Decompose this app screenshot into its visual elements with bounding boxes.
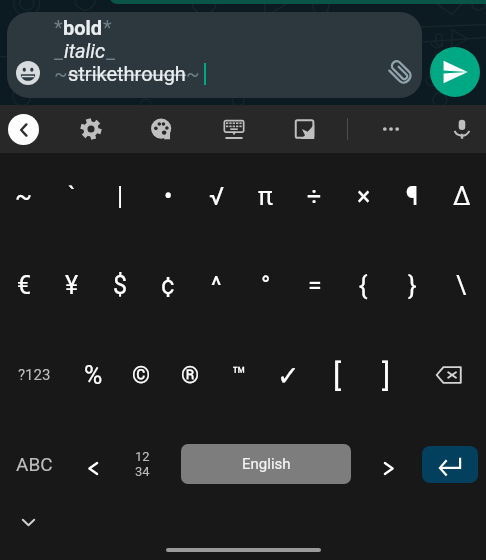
button[interactable]: Hide keyboard (16, 510, 40, 534)
button[interactable]: [ (313, 330, 362, 420)
button[interactable]: } (388, 240, 437, 330)
button[interactable]: \ (437, 240, 486, 330)
staticText: ] (382, 357, 391, 393)
staticText: ™ (232, 362, 247, 389)
staticText: ® (181, 362, 200, 389)
button[interactable]: English (181, 444, 351, 484)
staticText: } (408, 271, 417, 300)
button[interactable]: ~ (0, 153, 48, 240)
staticText: \ (456, 271, 467, 300)
button[interactable]: ` (48, 153, 96, 240)
button[interactable]: = (290, 240, 339, 330)
button[interactable]: √ (192, 153, 241, 240)
button[interactable]: ¶ (388, 153, 437, 240)
staticText: € (17, 271, 32, 300)
button[interactable]: Settings (72, 110, 110, 148)
staticText: = (308, 271, 322, 300)
staticText: × (357, 182, 371, 211)
staticText: © (132, 362, 151, 389)
button[interactable]: Theme (143, 110, 181, 148)
button[interactable]: * (7, 12, 422, 98)
staticText: $ (113, 271, 128, 300)
staticText: _ (106, 39, 116, 62)
staticText: 34 (135, 464, 150, 479)
staticText: ?123 (18, 366, 51, 384)
button[interactable]: × (339, 153, 388, 240)
button[interactable]: 12 (118, 420, 167, 508)
button[interactable]: ✓ (264, 330, 313, 420)
button[interactable]: Enter (422, 446, 478, 483)
button[interactable]: ABC (0, 420, 69, 508)
staticText: ✓ (277, 360, 300, 391)
button[interactable]: ° (241, 240, 290, 330)
button[interactable]: Emoji (10, 55, 46, 91)
staticText: * (54, 16, 63, 39)
staticText: ¢ (161, 271, 175, 300)
staticText: ° (261, 271, 271, 300)
staticText: 12 (135, 449, 150, 464)
staticText: ` (68, 182, 76, 211)
button[interactable]: π (241, 153, 290, 240)
staticText: English (242, 455, 291, 473)
staticText: ÷ (307, 182, 322, 211)
button[interactable]: Attach (382, 54, 418, 90)
staticText: √ (209, 182, 224, 211)
button[interactable]: ÷ (290, 153, 339, 240)
button[interactable]: ™ (215, 330, 264, 420)
staticText: bold (63, 16, 103, 39)
staticText: | (117, 182, 124, 211)
staticText: * (103, 16, 112, 39)
button[interactable]: Δ (437, 153, 486, 240)
button[interactable]: Delete (411, 330, 486, 420)
button[interactable]: • (144, 153, 192, 240)
button[interactable]: | (96, 153, 144, 240)
button[interactable]: Resize (286, 110, 324, 148)
staticText: Δ (453, 182, 471, 211)
button[interactable]: ¢ (144, 240, 192, 330)
button[interactable]: ¥ (48, 240, 96, 330)
staticText: • (164, 182, 173, 211)
staticText: { (359, 271, 368, 300)
staticText: [ (333, 357, 342, 393)
staticText: ¥ (65, 271, 79, 300)
button[interactable]: € (0, 240, 48, 330)
button[interactable]: % (69, 330, 117, 420)
staticText: % (84, 361, 103, 390)
button[interactable]: ] (362, 330, 411, 420)
staticText: ~ (15, 182, 33, 211)
button[interactable]: © (117, 330, 166, 420)
button[interactable]: { (339, 240, 388, 330)
button[interactable]: More (372, 110, 410, 148)
staticText: π (258, 182, 273, 211)
staticText: ABC (16, 453, 53, 475)
staticText: ~ (186, 62, 200, 85)
button[interactable]: $ (96, 240, 144, 330)
button[interactable]: ^ (192, 240, 241, 330)
staticText: ¶ (406, 182, 419, 211)
button[interactable]: Voice input (443, 110, 481, 148)
staticText: ~ (54, 62, 68, 85)
staticText: strikethrough (68, 62, 186, 85)
button[interactable]: Keyboard (215, 110, 253, 148)
staticText: _ (54, 39, 64, 62)
button[interactable]: Back (8, 114, 39, 145)
button[interactable]: ?123 (0, 330, 69, 420)
button[interactable]: Send (430, 47, 480, 97)
staticText: ^ (211, 271, 222, 300)
button[interactable]: ® (166, 330, 215, 420)
staticText: italic (64, 39, 106, 62)
button[interactable] (69, 420, 118, 508)
button[interactable] (364, 420, 413, 508)
